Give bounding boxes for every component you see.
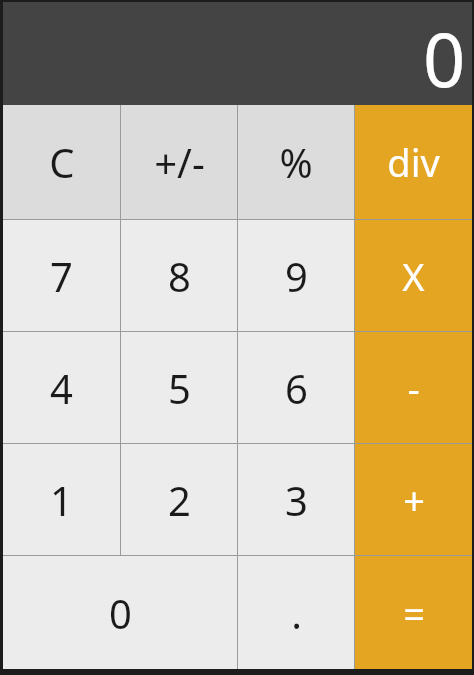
staticText: 3: [285, 473, 308, 527]
button[interactable]: 8: [121, 220, 237, 331]
button[interactable]: 1: [3, 444, 120, 555]
staticText: -: [407, 362, 420, 414]
staticText: 4: [50, 361, 73, 415]
staticText: 0: [423, 8, 466, 105]
staticText: C: [49, 135, 75, 189]
button[interactable]: -: [355, 332, 472, 443]
staticText: X: [402, 250, 425, 302]
staticText: 0: [109, 586, 132, 640]
button[interactable]: .: [238, 556, 354, 669]
button[interactable]: 0: [3, 556, 237, 669]
staticText: 7: [50, 249, 73, 303]
button[interactable]: 6: [238, 332, 354, 443]
staticText: 8: [168, 249, 191, 303]
button[interactable]: C: [3, 105, 120, 219]
staticText: div: [387, 136, 440, 188]
staticText: %: [279, 135, 313, 189]
staticText: 6: [285, 361, 308, 415]
button[interactable]: %: [238, 105, 354, 219]
button[interactable]: +/-: [121, 105, 237, 219]
staticText: 2: [168, 473, 191, 527]
staticText: 1: [50, 473, 73, 527]
button[interactable]: 5: [121, 332, 237, 443]
button[interactable]: 2: [121, 444, 237, 555]
staticText: +/-: [154, 135, 205, 189]
staticText: 9: [285, 249, 308, 303]
button[interactable]: 4: [3, 332, 120, 443]
button[interactable]: 3: [238, 444, 354, 555]
button[interactable]: =: [355, 556, 472, 669]
button[interactable]: div: [355, 105, 472, 219]
staticText: +: [403, 474, 425, 526]
staticText: 5: [168, 361, 191, 415]
button[interactable]: 9: [238, 220, 354, 331]
staticText: .: [291, 586, 302, 640]
button[interactable]: 7: [3, 220, 120, 331]
button[interactable]: X: [355, 220, 472, 331]
staticText: =: [403, 587, 425, 639]
button[interactable]: +: [355, 444, 472, 555]
